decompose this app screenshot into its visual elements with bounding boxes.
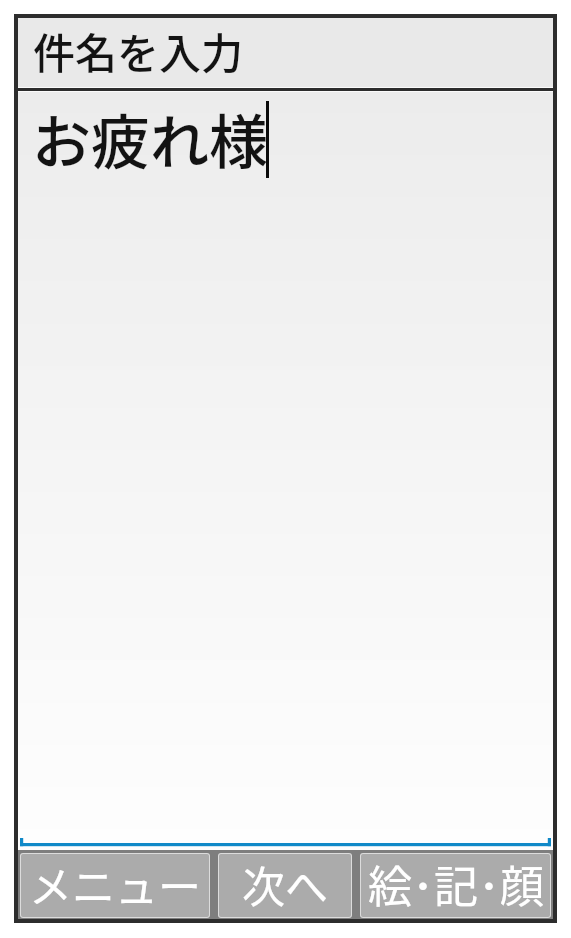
button[interactable]: 絵･記･顔	[361, 854, 550, 917]
staticText: 次へ	[242, 854, 328, 915]
staticText: メニュー	[29, 854, 201, 915]
button[interactable]: お疲れ様	[18, 92, 553, 850]
button[interactable]: メニュー	[21, 854, 209, 917]
button[interactable]: 次へ	[219, 854, 351, 917]
staticText: 件名を入力	[33, 20, 244, 81]
staticText: お疲れ様	[32, 96, 269, 181]
other: Soft key bar	[18, 850, 553, 919]
button[interactable]: 件名を入力	[18, 18, 553, 87]
staticText: 絵･記･顔	[368, 854, 544, 915]
